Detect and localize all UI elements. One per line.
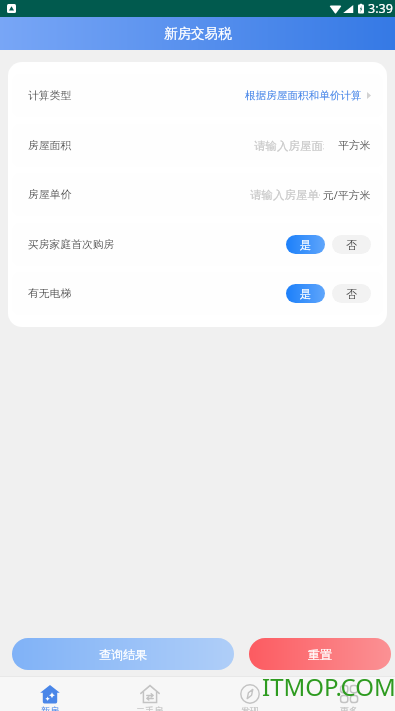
staticText: 请输入房屋单价 (250, 188, 320, 202)
button[interactable]: 新房 (0, 677, 99, 711)
button[interactable]: 发现 (200, 677, 299, 711)
staticText: 查询结果 (99, 647, 147, 662)
staticText: 3:39 (368, 0, 393, 17)
staticText: 否 (346, 287, 357, 301)
staticText: ITMOP.COM (262, 670, 395, 703)
staticText: 更多 (340, 705, 358, 711)
button[interactable]: 查询结果 (12, 638, 234, 670)
button[interactable]: 二手房 (100, 677, 199, 711)
staticText: 新房 (41, 705, 59, 711)
button[interactable]: 房屋单价 (12, 173, 383, 216)
staticText: 房屋面积 (28, 139, 72, 153)
staticText: 元/平方米 (323, 187, 371, 202)
staticText: 发现 (241, 705, 259, 711)
staticText: 新房交易税 (164, 25, 232, 42)
button[interactable]: 是 (286, 235, 325, 254)
staticText: 重置 (308, 647, 332, 662)
staticText: 计算类型 (28, 89, 72, 103)
staticText: 否 (346, 238, 357, 252)
staticText: 平方米 (338, 139, 371, 153)
staticText: 房屋单价 (28, 188, 72, 202)
button[interactable]: 计算类型 (12, 74, 383, 117)
staticText: 买房家庭首次购房 (28, 238, 115, 252)
button[interactable]: 否 (332, 235, 371, 254)
button[interactable]: 房屋面积 (12, 124, 383, 167)
button[interactable]: 否 (332, 284, 371, 303)
button[interactable]: 更多 (299, 677, 395, 711)
staticText: 是 (300, 287, 311, 301)
staticText: 二手房 (136, 705, 163, 711)
staticText: 根据房屋面积和单价计算 (245, 89, 362, 102)
button[interactable]: 买房家庭首次购房 (12, 223, 383, 266)
staticText: 有无电梯 (28, 287, 72, 301)
staticText: 是 (300, 238, 311, 252)
button[interactable]: 重置 (249, 638, 391, 670)
button[interactable]: 是 (286, 284, 325, 303)
staticText: 请输入房屋面积 (254, 139, 324, 153)
button[interactable]: 有无电梯 (12, 272, 383, 315)
